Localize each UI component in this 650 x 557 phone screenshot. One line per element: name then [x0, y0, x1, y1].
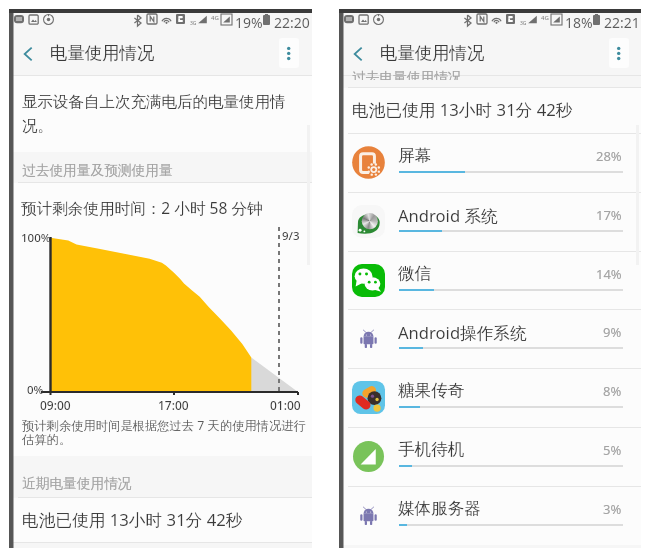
staticText: 3%	[603, 500, 622, 518]
staticText: 3G	[520, 20, 527, 27]
staticText: 28%	[596, 147, 622, 165]
button[interactable]: 屏幕	[339, 133, 641, 192]
staticText: 屏幕	[398, 145, 432, 166]
button[interactable]: 糖果传奇	[339, 368, 641, 427]
staticText: 微信	[398, 263, 432, 284]
staticText: 电量使用情况	[380, 42, 485, 64]
staticText: 19%	[235, 13, 263, 32]
staticText: 22:21	[604, 13, 640, 32]
staticText: 9%	[603, 323, 622, 341]
staticText: 手机待机	[398, 439, 465, 460]
staticText: 14%	[596, 265, 622, 283]
button[interactable]: 微信	[339, 251, 641, 310]
staticText: 5%	[603, 441, 622, 459]
staticText: 近期电量使用情况	[22, 475, 132, 492]
staticText: 17%	[596, 206, 622, 224]
staticText: 09:00	[40, 397, 71, 413]
staticText: Android 系统	[398, 204, 498, 227]
staticText: 过去电量使用情况	[352, 69, 462, 80]
staticText: 预计剩余使用时间：2 小时 58 分钟	[21, 197, 263, 218]
staticText: 电量使用情况	[50, 42, 155, 64]
staticText: 过去使用量及预测使用量	[22, 162, 173, 179]
button[interactable]: 媒体服务器	[339, 486, 641, 545]
staticText: 22:20	[274, 13, 310, 32]
staticText: 100%	[21, 230, 51, 246]
button[interactable]: Android 系统	[339, 192, 641, 251]
staticText: 3G	[190, 20, 197, 27]
button[interactable]: 手机待机	[339, 427, 641, 486]
button[interactable]: More options	[601, 31, 641, 75]
staticText: 18%	[565, 13, 593, 32]
staticText: 01:00	[270, 397, 301, 413]
staticText: 显示设备自上次充满电后的电量使用情况。	[22, 92, 297, 135]
staticText: 预计剩余使用时间是根据您过去 7 天的使用情况进行估算的。	[22, 417, 314, 448]
button[interactable]: Android操作系统	[339, 309, 641, 368]
staticText: 媒体服务器	[398, 498, 481, 519]
staticText: 9/3	[282, 228, 300, 244]
button[interactable]: Back	[9, 31, 45, 75]
staticText: 4G	[211, 14, 219, 22]
staticText: 电池已使用 13小时 31分 42秒	[22, 508, 243, 531]
button[interactable]: Back	[339, 31, 375, 75]
staticText: 糖果传奇	[398, 380, 465, 401]
staticText: 4G	[541, 14, 549, 22]
staticText: Android操作系统	[398, 321, 527, 344]
staticText: 电池已使用 13小时 31分 42秒	[352, 98, 573, 121]
staticText: 8%	[603, 382, 622, 400]
staticText: 0%	[27, 382, 44, 398]
staticText: 17:00	[158, 397, 189, 413]
button[interactable]: More options	[271, 31, 311, 75]
